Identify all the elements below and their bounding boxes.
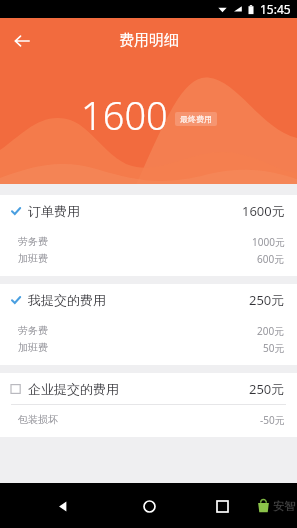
staticText: 加班费	[18, 252, 48, 265]
staticText: 250元	[249, 291, 285, 309]
staticText: 劳务费	[18, 324, 48, 337]
button[interactable]: Back	[0, 19, 44, 63]
staticText: 600元	[257, 252, 285, 266]
staticText: 200元	[257, 324, 285, 338]
staticText: 最终费用	[180, 114, 212, 124]
button[interactable]: 我提交的费用	[0, 284, 297, 315]
staticText: 250元	[249, 380, 285, 398]
staticText: 企业提交的费用	[28, 381, 119, 397]
staticText: 1600元	[242, 202, 285, 220]
button[interactable]: 订单费用	[0, 195, 297, 226]
button[interactable]: Back	[48, 491, 78, 521]
button[interactable]: Home	[134, 491, 164, 521]
staticText: 1000元	[252, 235, 285, 249]
staticText: 50元	[263, 341, 285, 355]
button[interactable]: Recents	[207, 491, 237, 521]
staticText: 劳务费	[18, 235, 48, 248]
staticText: 15:45	[260, 1, 291, 17]
staticText: 包装损坏	[18, 413, 58, 426]
staticText: 加班费	[18, 341, 48, 354]
button[interactable]: 企业提交的费用	[0, 373, 297, 404]
staticText: 安智	[273, 499, 295, 513]
staticText: -50元	[260, 413, 285, 427]
staticText: 我提交的费用	[28, 292, 106, 308]
staticText: 1600	[81, 89, 168, 141]
staticText: 费用明细	[119, 31, 179, 50]
staticText: 订单费用	[28, 203, 80, 219]
